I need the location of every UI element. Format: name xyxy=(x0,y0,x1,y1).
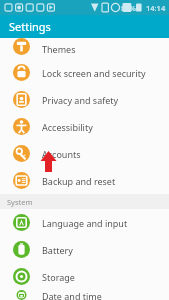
staticText: System xyxy=(7,197,33,207)
button[interactable]: Settings xyxy=(0,15,169,38)
button[interactable]: Date and time xyxy=(0,290,169,300)
staticText: Backup and reset xyxy=(42,175,116,187)
staticText: Accessibility xyxy=(42,121,93,133)
button[interactable]: Accounts xyxy=(0,140,169,167)
button[interactable]: Backup and reset xyxy=(0,167,169,194)
staticText: Storage xyxy=(42,271,75,283)
button[interactable]: Themes xyxy=(0,38,169,59)
staticText: Battery xyxy=(42,244,73,256)
button[interactable]: Lock screen and security xyxy=(0,59,169,86)
staticText: Accounts xyxy=(42,148,81,160)
staticText: 85% xyxy=(121,3,136,13)
staticText: Lock screen and security xyxy=(42,67,146,79)
staticText: Privacy and safety xyxy=(42,94,119,106)
staticText: 14:14 xyxy=(146,3,166,13)
staticText: Themes xyxy=(42,43,76,55)
button[interactable]: Language and input xyxy=(0,209,169,236)
staticText: Date and time xyxy=(42,290,102,300)
button[interactable]: Battery xyxy=(0,236,169,263)
button[interactable]: Storage xyxy=(0,263,169,290)
staticText: Settings xyxy=(9,19,51,34)
button[interactable]: Privacy and safety xyxy=(0,86,169,113)
staticText: Language and input xyxy=(42,217,128,229)
button[interactable]: Accessibility xyxy=(0,113,169,140)
